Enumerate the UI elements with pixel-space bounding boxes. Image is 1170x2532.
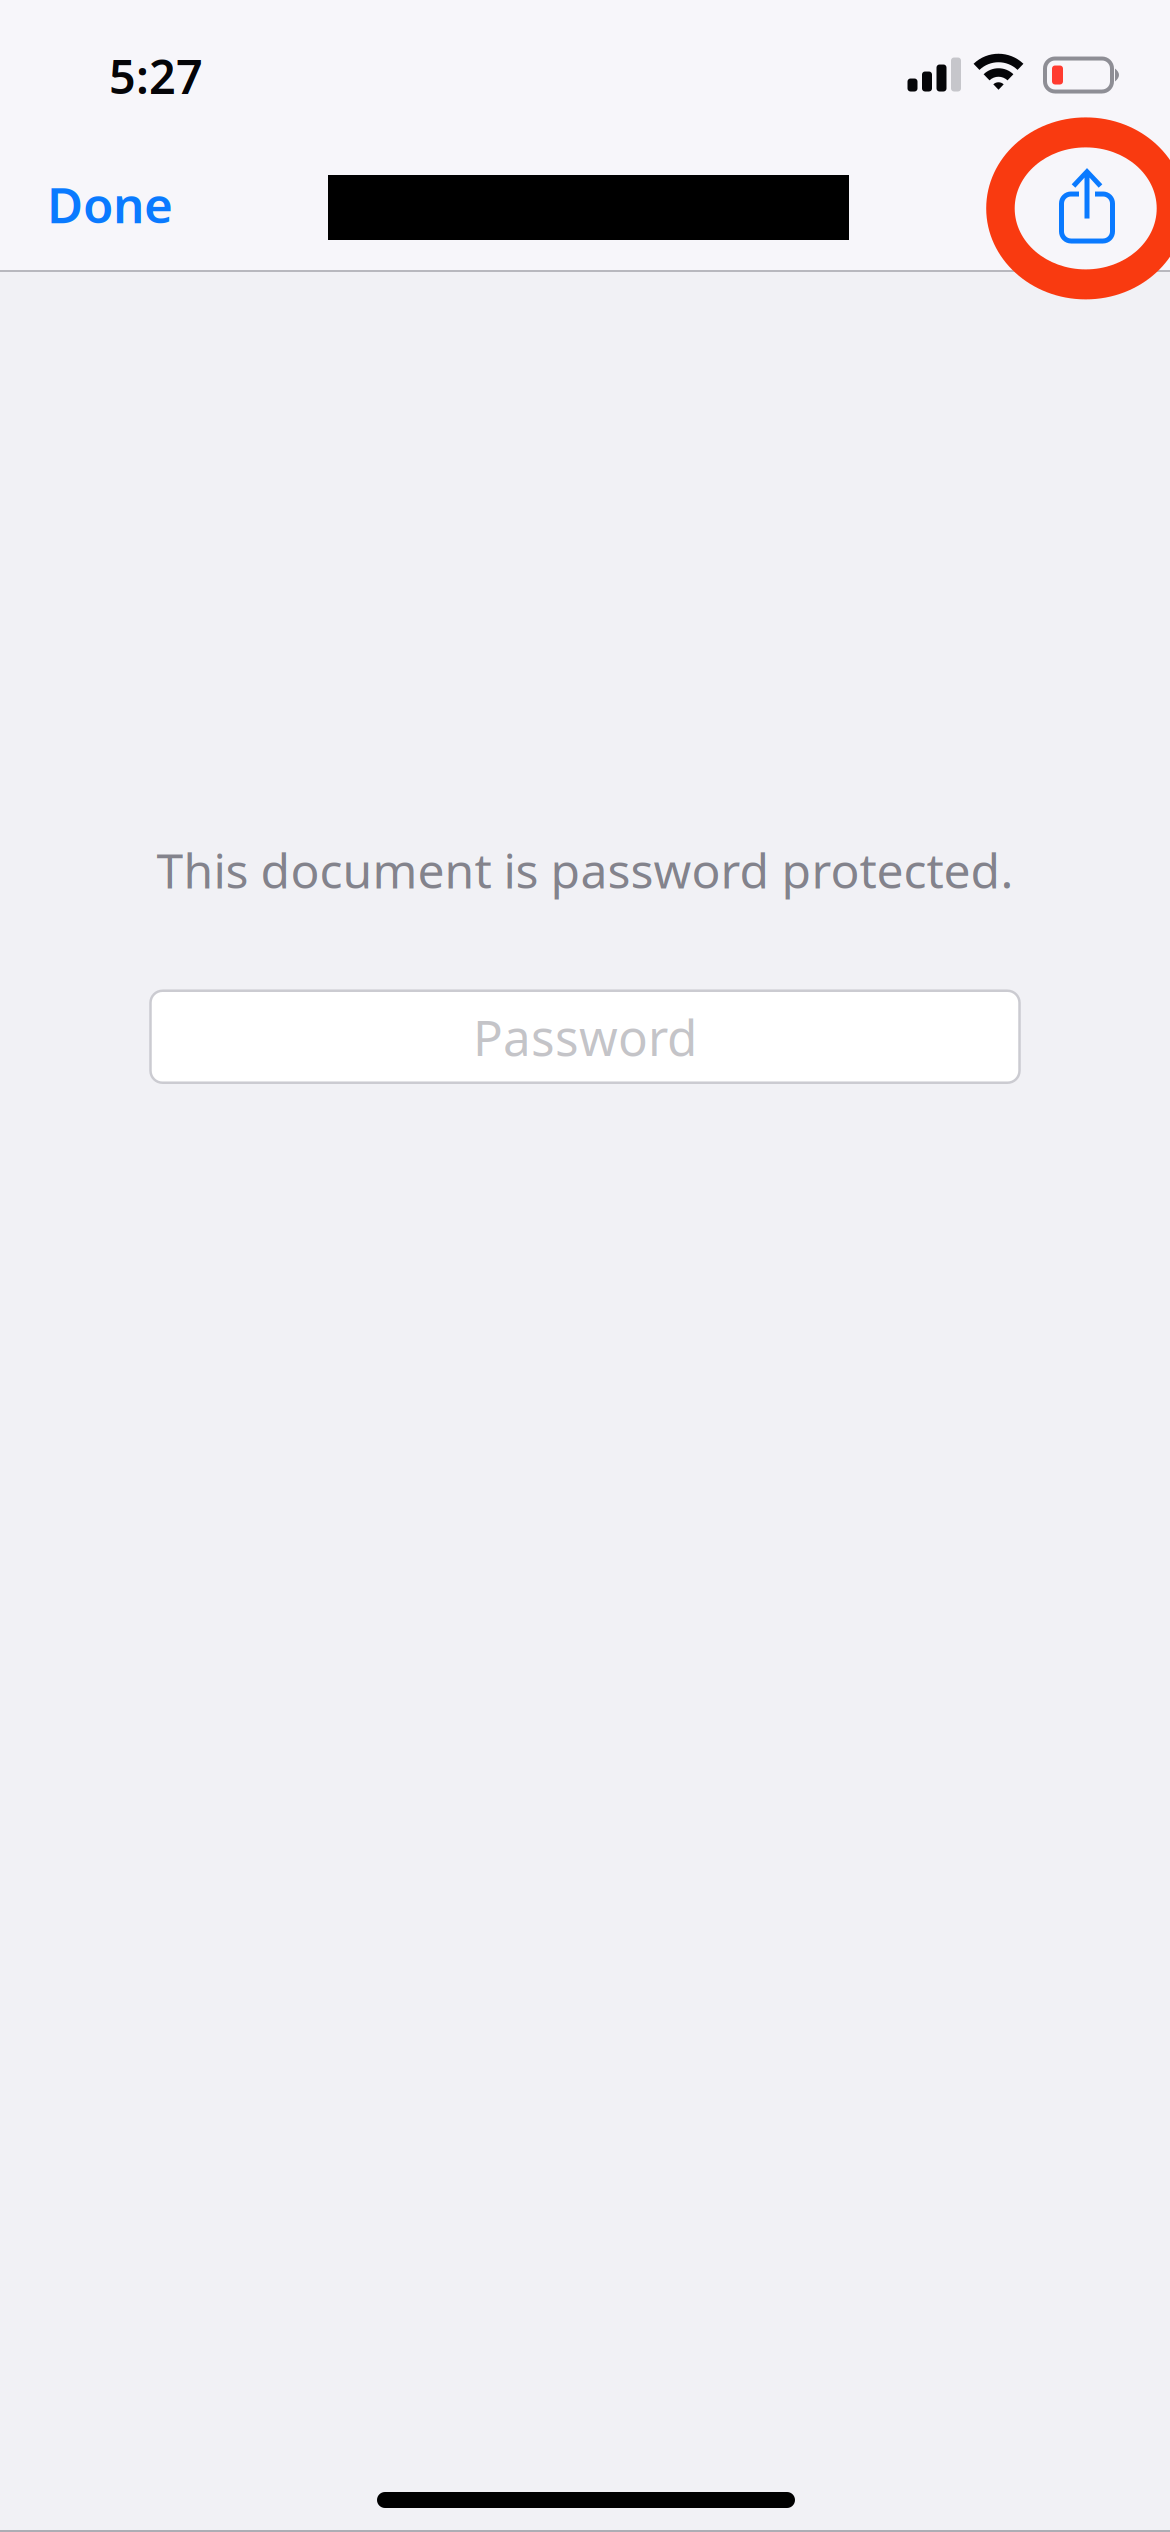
staticText: Done (47, 171, 173, 237)
staticText: Password (473, 1004, 697, 1069)
staticText: This document is password protected. (156, 838, 1013, 902)
button[interactable]: Share (1017, 132, 1170, 275)
button[interactable]: Password (150, 991, 1019, 1083)
staticText: 5:27 (109, 45, 203, 107)
button[interactable]: Done (0, 136, 203, 272)
